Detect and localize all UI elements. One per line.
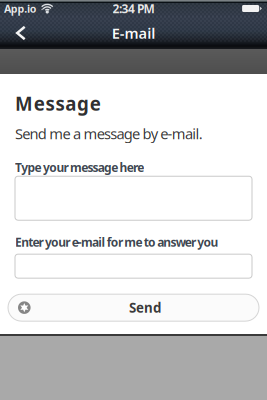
staticText: Send me a message by e-mail. [15, 124, 203, 143]
staticText: 2:34 PM [112, 0, 154, 16]
staticText: E-mail [112, 23, 155, 43]
staticText: App.io [4, 1, 37, 16]
staticText: Type your message here [15, 159, 144, 175]
button[interactable]: Back [0, 17, 42, 49]
button[interactable]: Send [8, 294, 259, 321]
staticText: Enter your e-mail for me to answer you [15, 234, 219, 250]
staticText: Send [129, 299, 161, 316]
staticText: Message [15, 91, 101, 116]
